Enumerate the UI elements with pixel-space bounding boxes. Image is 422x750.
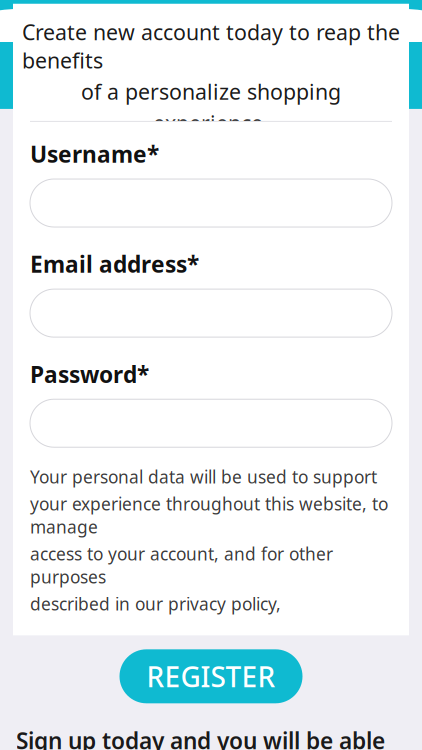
staticText: access to your account, and for other pu…: [30, 542, 333, 588]
button[interactable]: Text field: [30, 289, 392, 337]
staticText: Username*: [30, 139, 159, 169]
staticText: of a personalize shopping: [81, 77, 341, 106]
staticText: REGISTER: [146, 658, 275, 695]
button[interactable]: Text field: [30, 399, 392, 447]
staticText: Sign up today and you will be able to :: [16, 725, 385, 750]
staticText: Create new account today to reap the ben…: [22, 18, 400, 74]
button[interactable]: REGISTER: [119, 649, 302, 703]
staticText: Your personal data will be used to suppo…: [30, 465, 377, 488]
staticText: described in our privacy policy,: [30, 592, 281, 615]
staticText: Email address*: [30, 249, 199, 279]
staticText: your experience throughout this website,…: [30, 492, 388, 538]
button[interactable]: Text field: [30, 179, 392, 227]
staticText: experience.: [153, 109, 269, 137]
staticText: Password*: [30, 359, 149, 389]
